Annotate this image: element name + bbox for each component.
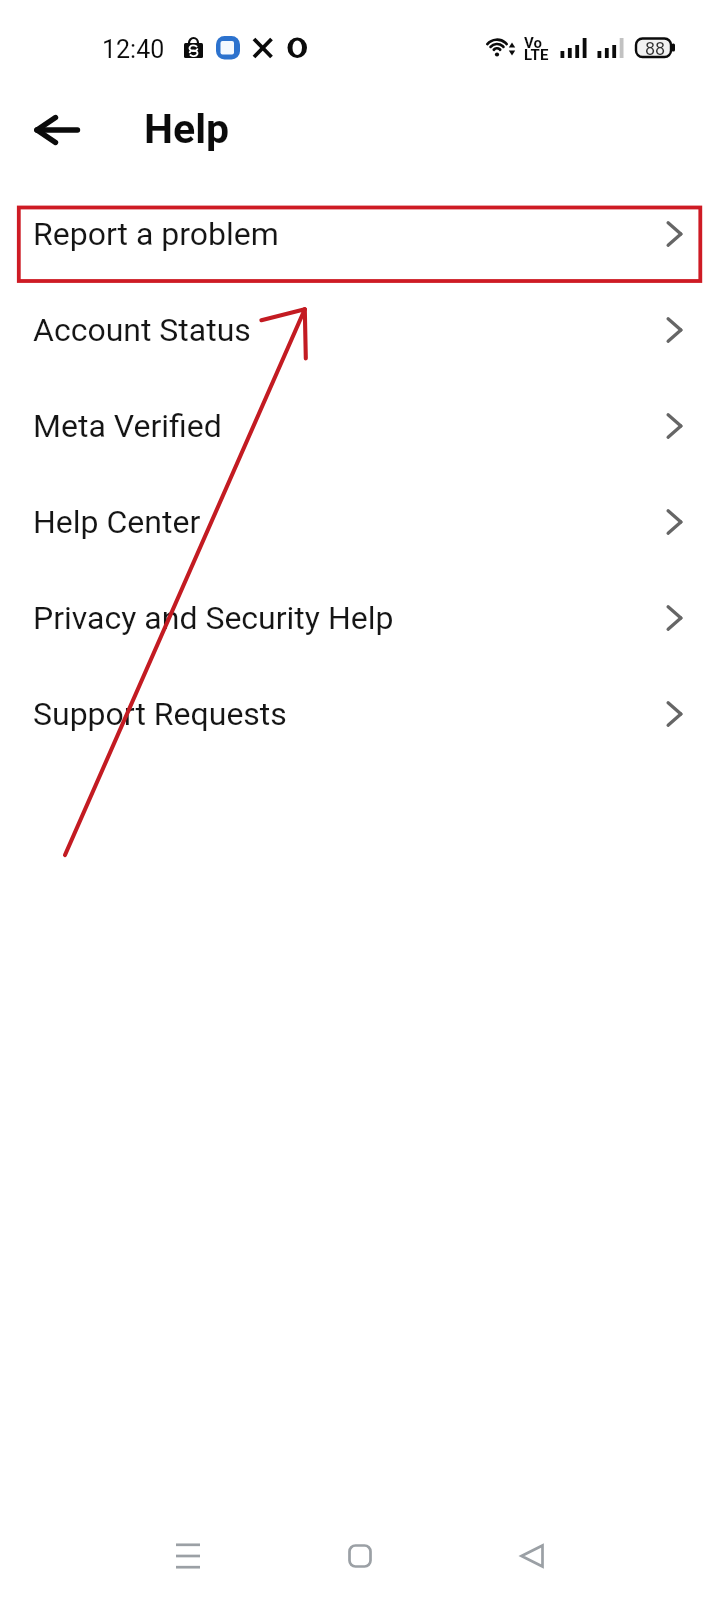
button[interactable]: Support Requests [0, 666, 720, 762]
staticText: Report a problem [33, 215, 279, 253]
staticText: Help [144, 105, 230, 153]
button[interactable]: Meta Verified [0, 378, 720, 474]
staticText: 88 [645, 38, 666, 59]
staticText: LTE [524, 46, 549, 64]
button[interactable]: Home [320, 1516, 400, 1596]
button[interactable]: Recent apps [148, 1516, 228, 1596]
staticText: Support Requests [33, 695, 287, 733]
staticText: 12:40 [102, 35, 165, 64]
staticText: Account Status [33, 311, 251, 349]
staticText: Privacy and Security Help [33, 599, 394, 637]
button[interactable]: Back [492, 1516, 572, 1596]
button[interactable]: Account Status [0, 282, 720, 378]
staticText: Vo [524, 34, 542, 52]
button[interactable]: Back [14, 88, 98, 172]
button[interactable]: Report a problem [0, 186, 720, 282]
button[interactable]: Help Center [0, 474, 720, 570]
staticText: Help Center [33, 503, 201, 541]
staticText: Meta Verified [33, 407, 222, 445]
button[interactable]: Privacy and Security Help [0, 570, 720, 666]
